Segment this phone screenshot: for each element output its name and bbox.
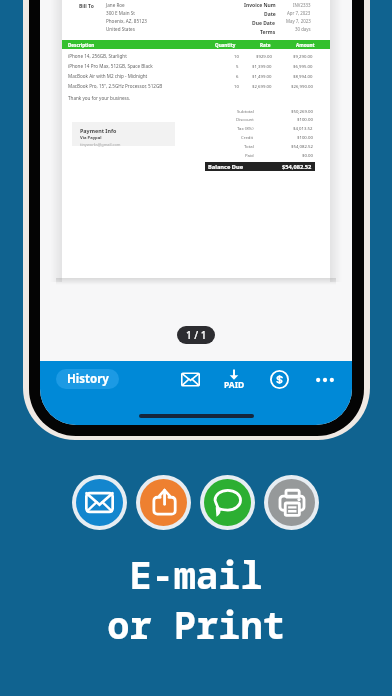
staticText: Apr 7, 2023 [287,10,311,16]
staticText: iPhone 14, 256GB, Starlight [68,53,127,59]
staticText: Thank you for your business. [68,95,131,101]
button[interactable]: Share [140,479,187,526]
staticText: Payment Info [80,127,117,134]
staticText: Subtotal [237,108,254,114]
staticText: Quantity [215,42,236,48]
staticText: Due Date [252,20,276,27]
staticText: May 7, 2023 [286,18,311,24]
staticText: Via Paypal [80,135,102,141]
staticText: History [67,371,109,387]
staticText: iPhone 14 Pro Max, 512GB, Space Black [68,63,153,69]
staticText: 30 days [295,26,311,32]
staticText: $8,994.00 [293,73,313,79]
button[interactable]: Payment [265,365,293,393]
button[interactable]: Email [76,479,123,526]
staticText: $50,269.00 [291,108,313,114]
staticText: 5 [236,63,239,69]
staticText: Terms [260,29,276,36]
staticText: Bill To [79,3,94,10]
staticText: 10 [234,83,239,89]
staticText: $0.00 [302,152,313,158]
staticText: $100.00 [297,134,313,140]
staticText: E-mail [129,549,263,599]
staticText: Balance Due [208,163,244,171]
staticText: 6 [236,73,239,79]
staticText: Credit [241,134,254,140]
staticText: 1 / 1 [186,328,207,342]
button[interactable]: More options [311,366,339,394]
button[interactable]: Email [176,365,204,393]
staticText: $929.00 [256,53,272,59]
staticText: $2,699.00 [252,83,272,89]
button[interactable]: Mark as paid [221,367,247,393]
staticText: MacBook Air with M2 chip - Midnight [68,73,148,79]
staticText: 10 [234,53,239,59]
staticText: Jane Roe [106,2,125,8]
staticText: $26,990.00 [291,83,313,89]
staticText: $4,013.52 [293,125,313,131]
staticText: Discount [236,116,254,122]
staticText: $6,995.00 [293,63,313,69]
button[interactable]: Message [204,479,251,526]
staticText: Paid [245,152,254,158]
staticText: Description [68,42,95,48]
button[interactable]: 1 / 1 [177,326,215,344]
staticText: $54,082.52 [291,143,313,149]
staticText: $100.00 [297,116,313,122]
staticText: $1,399.00 [252,63,272,69]
staticText: Tax (8%) [237,125,254,131]
button[interactable]: Print [268,479,315,526]
staticText: MacBook Pro, 15", 2.5GHz Processor, 512G… [68,83,163,89]
staticText: Total [244,143,254,149]
button[interactable]: History [56,369,119,389]
staticText: 300 E Main St [106,10,135,16]
staticText: Invoice Num [244,2,276,9]
staticText: Phoenix, AZ, 85123 [106,18,147,24]
staticText: Rate [260,42,271,48]
staticText: tinyworks@gmail.com [80,142,121,147]
staticText: $9,290.00 [293,53,313,59]
staticText: Amount [296,42,315,48]
staticText: Date [264,11,276,18]
staticText: INV2333 [293,2,311,8]
staticText: $54,082.52 [282,163,312,171]
staticText: or Print [107,599,285,649]
staticText: PAID [224,379,245,391]
staticText: $1,499.00 [252,73,272,79]
staticText: United States [106,26,135,32]
